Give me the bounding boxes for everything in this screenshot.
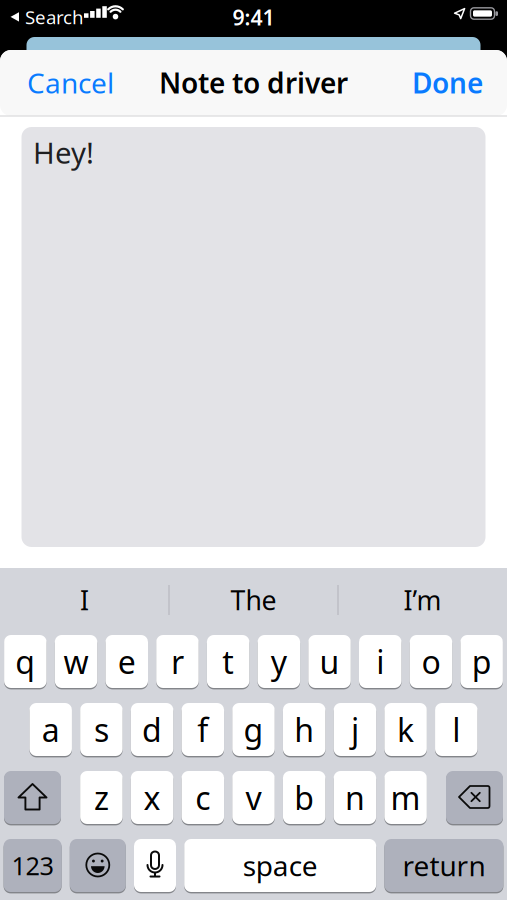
button[interactable]: I	[4, 578, 164, 622]
staticText: z	[94, 776, 109, 819]
button[interactable]: u	[308, 634, 351, 689]
button[interactable]: s	[80, 702, 123, 757]
staticText: I	[80, 582, 89, 618]
button[interactable]: e	[105, 634, 148, 689]
button[interactable]: m	[384, 770, 427, 825]
button[interactable]: return	[384, 838, 503, 893]
staticText: Cancel	[27, 64, 114, 101]
button[interactable]: y	[258, 634, 300, 689]
button[interactable]: Back to Search	[9, 4, 84, 29]
button[interactable]: h	[283, 702, 325, 757]
staticText: c	[195, 776, 210, 819]
staticText: 123	[12, 849, 54, 882]
button[interactable]: r	[156, 634, 199, 689]
staticText: j	[351, 708, 359, 751]
staticText: r	[171, 640, 184, 683]
staticText: The	[230, 582, 276, 618]
button[interactable]: x	[131, 770, 173, 825]
staticText: 9:41	[232, 3, 274, 31]
button[interactable]: j	[334, 702, 376, 757]
button[interactable]: q	[4, 634, 47, 689]
staticText: h	[294, 708, 314, 751]
staticText: u	[319, 640, 339, 683]
staticText: l	[452, 708, 460, 751]
staticText: Hey!	[33, 133, 94, 172]
staticText: a	[42, 708, 60, 751]
staticText: t	[222, 640, 234, 683]
button[interactable]: d	[131, 702, 173, 757]
staticText: space	[243, 847, 318, 884]
staticText: q	[15, 640, 35, 683]
button[interactable]: Dictate	[134, 838, 176, 893]
button[interactable]: The	[173, 578, 333, 622]
button[interactable]: n	[334, 770, 376, 825]
staticText: y	[271, 640, 287, 683]
staticText: Note to driver	[159, 64, 348, 101]
staticText: x	[144, 776, 161, 819]
staticText: f	[197, 708, 208, 751]
button[interactable]: k	[384, 702, 427, 757]
staticText: w	[63, 640, 88, 683]
staticText: o	[421, 640, 440, 683]
button[interactable]: f	[182, 702, 224, 757]
button[interactable]: I’m	[342, 578, 502, 622]
staticText: return	[402, 847, 485, 884]
staticText: n	[345, 776, 365, 819]
button[interactable]: Done	[412, 64, 483, 101]
button[interactable]: Cancel	[27, 64, 114, 101]
staticText: p	[472, 640, 492, 683]
button[interactable]: Shift	[4, 770, 61, 825]
staticText: d	[142, 708, 162, 751]
staticText: i	[376, 640, 384, 683]
button[interactable]: 123	[4, 838, 62, 893]
button[interactable]: w	[55, 634, 97, 689]
button[interactable]: Delete	[446, 770, 503, 825]
staticText: v	[245, 776, 261, 819]
staticText: e	[118, 640, 136, 683]
staticText: s	[94, 708, 109, 751]
button[interactable]: Emoji	[70, 838, 126, 893]
button[interactable]: i	[359, 634, 401, 689]
button[interactable]: c	[182, 770, 224, 825]
button[interactable]: b	[283, 770, 325, 825]
staticText: g	[243, 708, 263, 751]
staticText: I’m	[403, 582, 441, 618]
staticText: Done	[412, 64, 483, 101]
button[interactable]: a	[29, 702, 72, 757]
staticText: k	[397, 708, 414, 751]
button[interactable]: p	[460, 634, 503, 689]
button[interactable]: o	[410, 634, 452, 689]
staticText: b	[294, 776, 314, 819]
button[interactable]: space	[184, 838, 376, 893]
button[interactable]: z	[80, 770, 123, 825]
staticText: Search	[25, 4, 84, 29]
button[interactable]: l	[435, 702, 477, 757]
staticText: m	[391, 776, 421, 819]
button[interactable]: t	[207, 634, 249, 689]
button[interactable]: v	[232, 770, 275, 825]
button[interactable]: g	[232, 702, 275, 757]
